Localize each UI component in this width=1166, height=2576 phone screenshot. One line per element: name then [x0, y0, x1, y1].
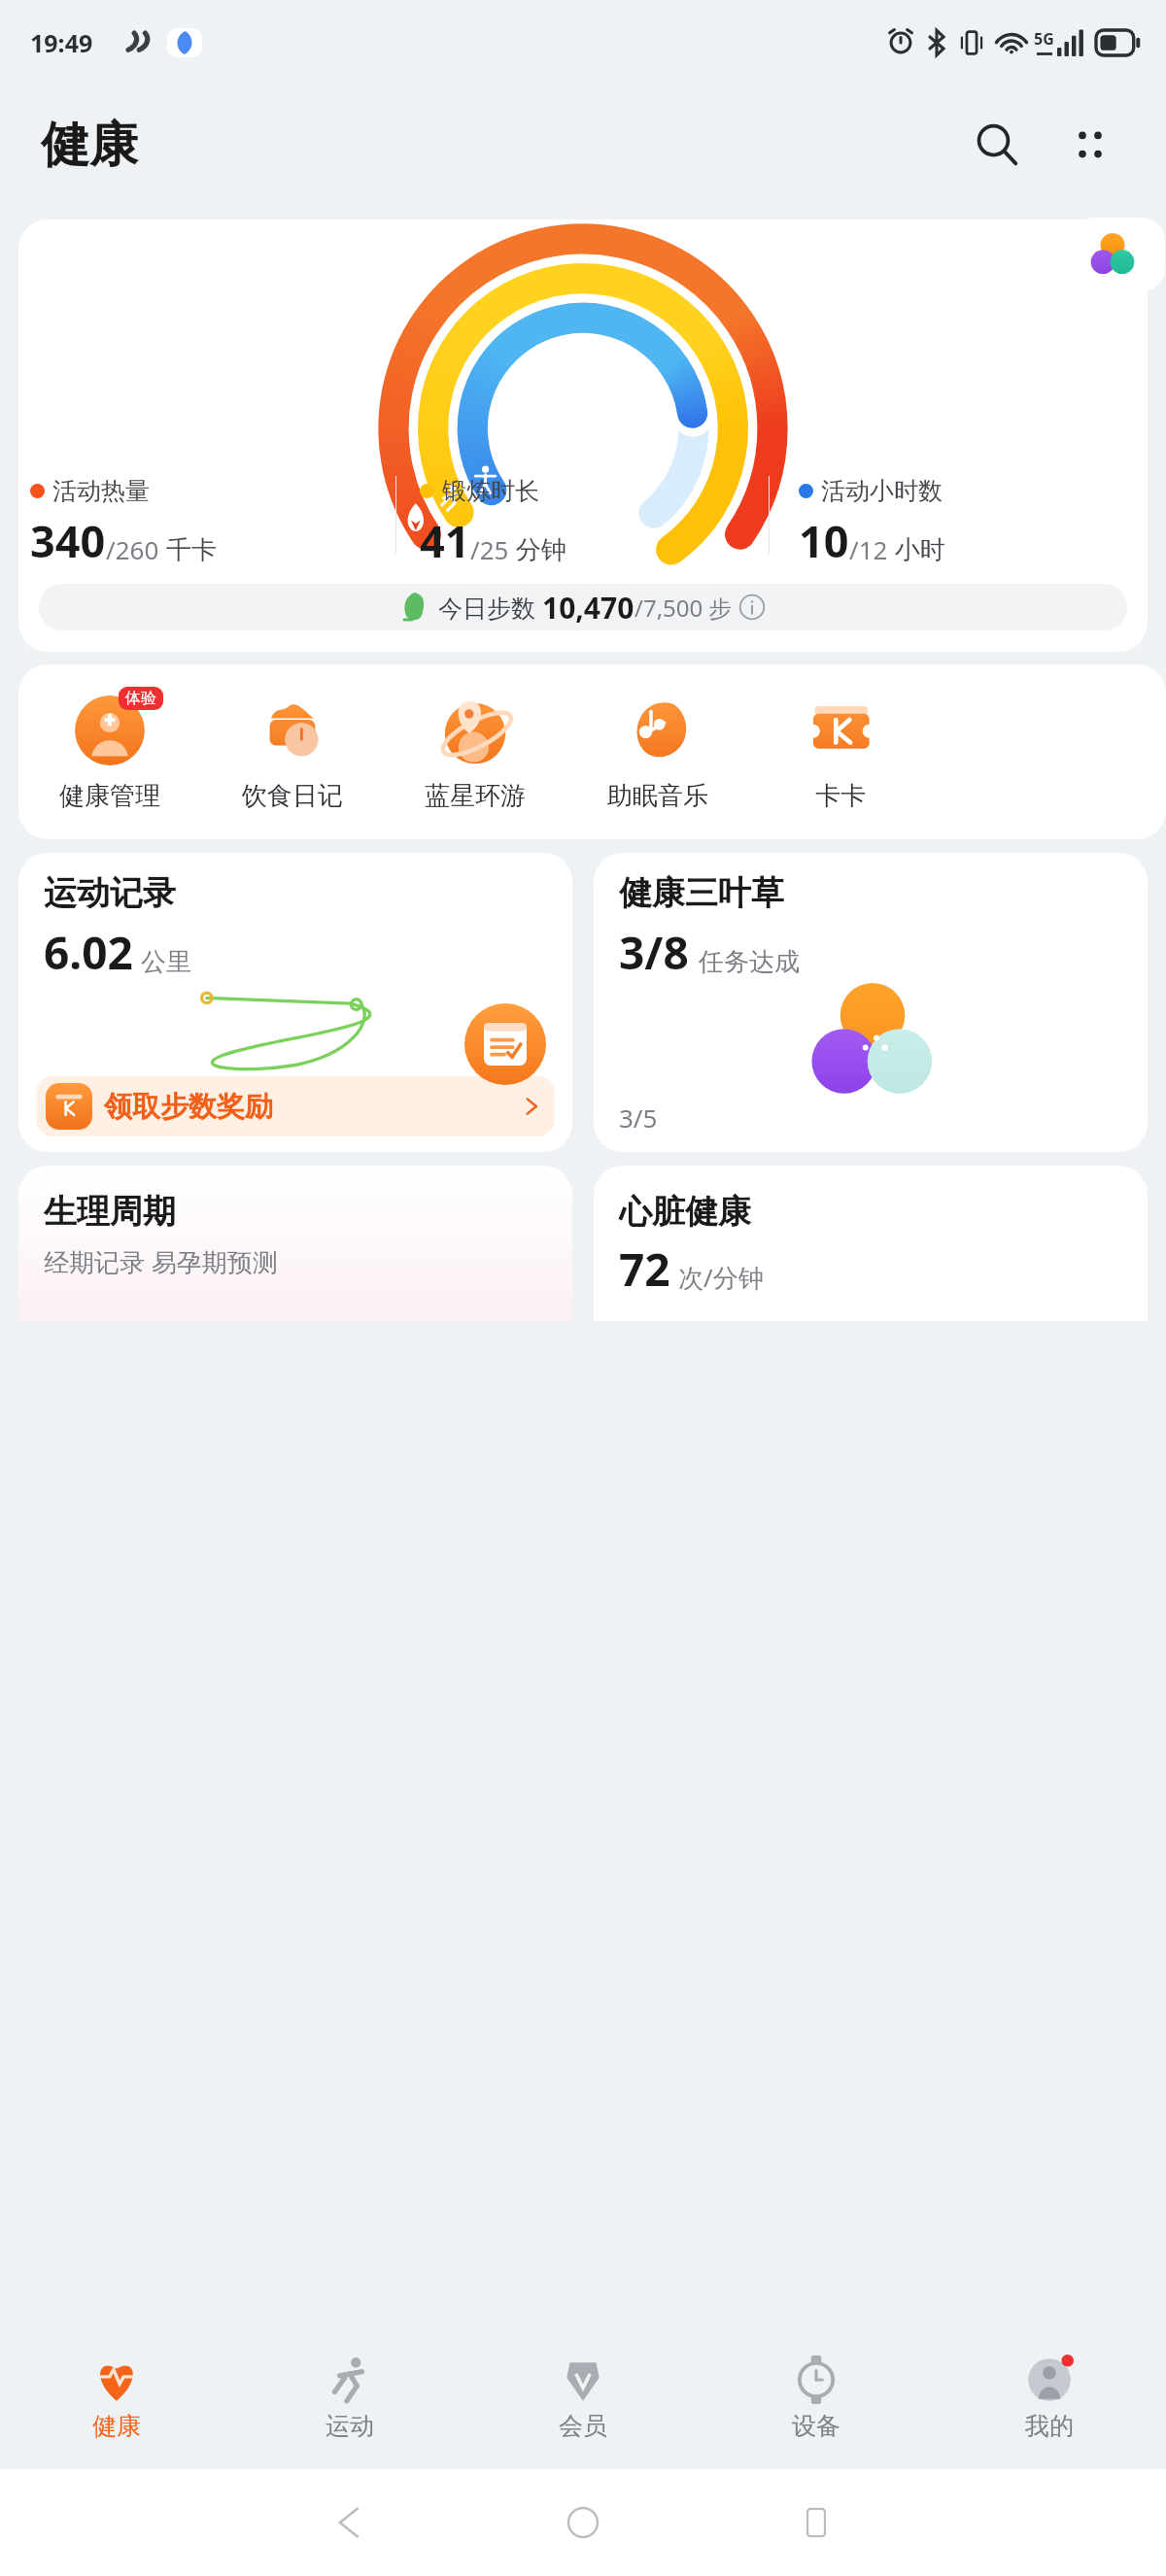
button[interactable]: 健康三叶草 — [594, 853, 1148, 1152]
button[interactable]: 卡卡 — [749, 693, 932, 812]
button[interactable]: 活动热量 — [18, 220, 1148, 652]
staticText: 健康管理 — [59, 780, 160, 812]
staticText: /25 — [470, 532, 509, 566]
staticText: 领取步数奖励 — [104, 1089, 273, 1125]
button[interactable]: More options — [1049, 104, 1131, 186]
button[interactable]: 生理周期 — [18, 1166, 572, 1321]
staticText: 10 — [799, 511, 849, 570]
staticText: 设备 — [792, 2411, 840, 2441]
button[interactable]: 会员 — [466, 2326, 700, 2469]
button[interactable]: 活动小时数 — [770, 476, 1142, 570]
staticText: 体验 — [125, 689, 156, 708]
staticText: 72 — [619, 1238, 670, 1300]
staticText: 3/5 — [619, 1101, 658, 1135]
staticText: 助眠音乐 — [607, 780, 708, 812]
button[interactable]: 我的 — [933, 2326, 1166, 2469]
button[interactable]: 运动记录 — [18, 853, 572, 1152]
staticText: 41 — [420, 511, 470, 570]
staticText: 6.02 — [44, 922, 133, 983]
button[interactable]: Add record — [464, 1003, 546, 1085]
button[interactable]: 心脏健康 — [594, 1166, 1148, 1321]
staticText: 活动小时数 — [821, 476, 943, 506]
staticText: 运动记录 — [44, 872, 176, 914]
button[interactable]: 运动 — [233, 2326, 466, 2469]
staticText: 小时 — [888, 531, 945, 566]
button[interactable]: 活动热量 — [24, 476, 395, 570]
button[interactable]: 健康 — [0, 2326, 233, 2469]
staticText: 分钟 — [509, 531, 566, 566]
button[interactable]: 体验 — [18, 693, 201, 812]
staticText: 生理周期 — [44, 1191, 176, 1233]
button[interactable]: Search — [956, 104, 1038, 186]
staticText: 5G — [1034, 28, 1054, 50]
staticText: 任务达成 — [699, 946, 800, 978]
staticText: 锻炼时长 — [442, 476, 539, 506]
staticText: 今日步数 — [438, 591, 542, 624]
staticText: 3/8 — [619, 922, 689, 983]
button[interactable]: 今日步数 — [39, 584, 1127, 630]
button[interactable]: 领取步数奖励 — [36, 1076, 555, 1136]
staticText: 运动 — [326, 2411, 374, 2441]
staticText: 340 — [30, 511, 106, 570]
staticText: 我的 — [1025, 2411, 1074, 2441]
staticText: 会员 — [559, 2411, 607, 2441]
staticText: 健康 — [41, 115, 138, 176]
staticText: 心脏健康 — [619, 1191, 751, 1233]
staticText: 饮食日记 — [242, 780, 343, 812]
staticText: 蓝星环游 — [425, 780, 526, 812]
button[interactable]: 锻炼时长 — [396, 476, 769, 570]
staticText: /260 — [106, 532, 159, 566]
staticText: 千卡 — [159, 531, 217, 566]
button[interactable]: 助眠音乐 — [566, 693, 749, 812]
staticText: 10,470 — [542, 588, 634, 627]
button[interactable]: 饮食日记 — [201, 693, 384, 812]
button[interactable]: Health clover — [1072, 218, 1165, 291]
staticText: 健康三叶草 — [619, 872, 784, 914]
staticText: 次/分钟 — [678, 1260, 764, 1295]
button[interactable]: 蓝星环游 — [384, 693, 566, 812]
staticText: 活动热量 — [52, 476, 150, 506]
staticText: 19:49 — [30, 26, 93, 59]
staticText: /12 — [849, 532, 888, 566]
staticText: 健康 — [92, 2411, 141, 2441]
staticText: 卡卡 — [815, 780, 866, 812]
button[interactable]: 设备 — [700, 2326, 933, 2469]
staticText: 经期记录 易孕期预测 — [44, 1244, 278, 1279]
staticText: /7,500 步 — [634, 592, 738, 624]
staticText: 公里 — [141, 946, 191, 978]
